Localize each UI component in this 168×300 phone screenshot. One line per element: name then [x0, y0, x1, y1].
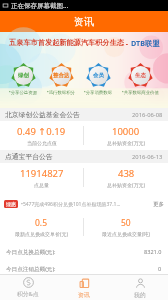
- button[interactable]: 11914827: [0, 163, 83, 192]
- staticText: -: [124, 38, 131, 48]
- button[interactable]: 资讯: [56, 275, 112, 300]
- staticText: 五泉车市首发起新能源汽车积分生态: [9, 38, 124, 47]
- staticText: 我的: [134, 291, 146, 298]
- button[interactable]: 0.5: [0, 213, 83, 241]
- staticText: 最近点兑换成交量(吨): [102, 231, 151, 238]
- staticText: 点通宝平台公告: [5, 152, 53, 161]
- staticText: 438: [118, 167, 135, 180]
- staticText: 10000: [112, 125, 140, 138]
- staticText: 总补贴资金(万元): [107, 182, 146, 189]
- staticText: •5477完成496积分兑换101点补贴现值37.1...: [21, 201, 153, 208]
- staticText: 50: [121, 217, 131, 229]
- button[interactable]: 积分与点: [0, 275, 56, 300]
- staticText: 绿创: [18, 72, 29, 79]
- button[interactable]: 50: [84, 213, 168, 241]
- button[interactable]: 五泉车市首发起新能源汽车积分生态: [0, 32, 168, 108]
- button[interactable]: 绿惠: [4, 197, 164, 211]
- staticText: DTB联盟: [131, 38, 160, 48]
- staticText: 资讯: [78, 291, 90, 298]
- staticText: 今日点兑换总额(元):: [6, 248, 56, 256]
- staticText: 正在保存屏幕截图...: [11, 1, 69, 10]
- staticText: 当前公允点值: [27, 140, 57, 146]
- staticText: •流行数据积分: [47, 89, 75, 95]
- staticText: 2016-06-13: [132, 153, 163, 161]
- staticText: 积分&点: [17, 290, 39, 298]
- staticText: •分享公益资源: [9, 89, 37, 95]
- button[interactable]: 点通宝平台公告: [5, 150, 163, 163]
- staticText: 8321.0: [144, 248, 162, 256]
- staticText: 2016-06-08: [132, 111, 163, 119]
- button[interactable]: 10000: [84, 121, 168, 150]
- staticText: •共享数据商业价值: [122, 89, 159, 95]
- button[interactable]: 0.49 ↑0.19: [0, 121, 83, 150]
- staticText: 北京绿创公益基金会公告: [5, 110, 80, 119]
- staticText: 11914827: [20, 167, 64, 180]
- staticText: 0.49 ↑0.19: [17, 125, 66, 138]
- button[interactable]: 北京绿创公益基金会公告: [5, 108, 163, 121]
- staticText: 生态: [135, 72, 146, 79]
- button[interactable]: 我的: [112, 275, 168, 300]
- staticText: •分享消费数据: [84, 89, 112, 95]
- staticText: 会员: [93, 72, 104, 79]
- staticText: 今日点注销总额(元):: [6, 265, 56, 273]
- button[interactable]: 今日点兑换总额(元):: [6, 247, 162, 257]
- staticText: 点总量: [34, 182, 49, 188]
- staticText: 整合达: [53, 72, 70, 79]
- staticText: 更多: [153, 201, 164, 208]
- staticText: 资讯: [74, 15, 94, 28]
- staticText: 最新点兑换成交单价(元): [15, 231, 69, 238]
- button[interactable]: 今日点注销总额(元):: [6, 264, 162, 274]
- button[interactable]: 438: [84, 163, 168, 192]
- staticText: 绿惠: [6, 201, 16, 207]
- staticText: 0: [158, 265, 162, 273]
- staticText: 0.5: [35, 217, 48, 229]
- button[interactable]: 资讯: [0, 11, 168, 32]
- staticText: 总补贴资金(万元): [107, 140, 146, 147]
